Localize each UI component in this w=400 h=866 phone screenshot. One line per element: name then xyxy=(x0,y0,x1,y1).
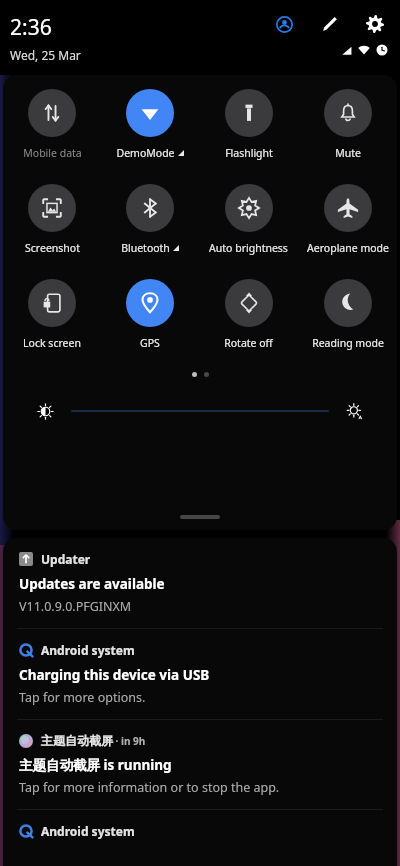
button[interactable]: Aeroplane mode xyxy=(298,184,397,255)
button[interactable]: Screenshot xyxy=(3,184,101,255)
button[interactable]: Lock screen xyxy=(3,279,101,350)
staticText: Android system xyxy=(41,642,135,658)
button[interactable]: 主题自动截屏 xyxy=(3,720,397,809)
button[interactable]: Edit tiles xyxy=(317,11,343,37)
staticText: Auto brightness xyxy=(209,241,288,255)
staticText: Updates are available xyxy=(19,575,165,593)
staticText: Updater xyxy=(41,551,91,567)
button[interactable]: GPS xyxy=(101,279,199,350)
staticText: · in 9h xyxy=(113,734,146,748)
staticText: 主题自动截屏 is running xyxy=(19,756,172,774)
button[interactable]: Auto brightness xyxy=(199,184,298,255)
staticText: Rotate off xyxy=(224,336,273,350)
button[interactable]: Android system xyxy=(3,810,397,852)
button[interactable]: Flashlight xyxy=(199,89,298,160)
staticText: Lock screen xyxy=(23,336,81,350)
button[interactable]: User account xyxy=(271,11,297,37)
staticText: Flashlight xyxy=(225,146,273,160)
button[interactable]: DemoMode xyxy=(101,89,199,160)
button[interactable]: Bluetooth xyxy=(101,184,199,255)
staticText: Reading mode xyxy=(312,336,384,350)
staticText: 2:36 xyxy=(10,13,52,42)
staticText: DemoMode xyxy=(116,146,175,160)
staticText: Tap for more information or to stop the … xyxy=(19,779,280,796)
button[interactable]: Collapse panel xyxy=(180,515,220,519)
button[interactable]: Mobile data xyxy=(3,89,101,160)
staticText: Tap for more options. xyxy=(19,689,146,706)
staticText: Wed, 25 Mar xyxy=(10,47,81,63)
staticText: V11.0.9.0.PFGINXM xyxy=(19,598,132,615)
button[interactable]: Mute xyxy=(298,89,397,160)
staticText: GPS xyxy=(140,336,160,350)
staticText: Aeroplane mode xyxy=(307,241,389,255)
staticText: Mute xyxy=(335,146,361,160)
button[interactable]: Rotate off xyxy=(199,279,298,350)
button[interactable]: Updater xyxy=(3,538,397,628)
button[interactable]: Settings xyxy=(362,11,388,37)
button[interactable]: Reading mode xyxy=(298,279,397,350)
staticText: Screenshot xyxy=(25,241,80,255)
staticText: Android system xyxy=(41,823,135,839)
staticText: Charging this device via USB xyxy=(19,666,210,684)
button[interactable]: Android system xyxy=(3,629,397,719)
button[interactable]: Brightness slider xyxy=(37,397,363,425)
staticText: 主题自动截屏 xyxy=(41,733,113,748)
staticText: Bluetooth xyxy=(121,241,170,255)
staticText: Mobile data xyxy=(23,146,82,160)
